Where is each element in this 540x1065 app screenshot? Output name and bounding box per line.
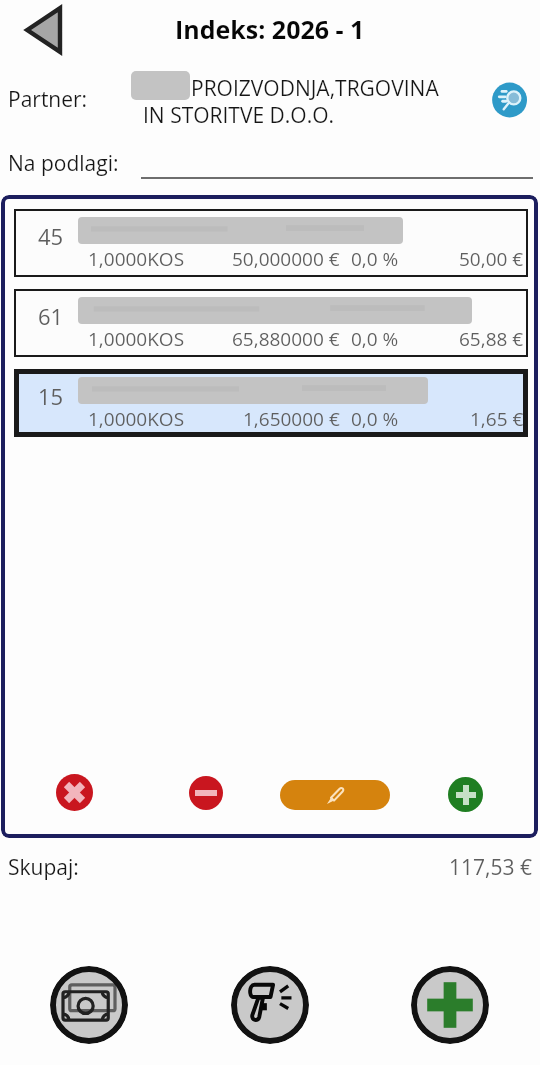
- button[interactable]: 61: [14, 289, 528, 357]
- button[interactable]: Cancel: [56, 774, 93, 811]
- button[interactable]: 45: [14, 209, 528, 277]
- staticText: 45: [38, 221, 64, 251]
- staticText: 15: [38, 381, 64, 411]
- staticText: 50,00 €: [459, 246, 524, 272]
- staticText: Skupaj:: [8, 853, 79, 882]
- button[interactable]: Remove: [189, 776, 223, 810]
- staticText: 1,650000 €: [243, 406, 340, 432]
- button[interactable]: Edit: [280, 780, 390, 810]
- button[interactable]: Payments: [50, 966, 128, 1044]
- button[interactable]: 15: [14, 369, 528, 437]
- button[interactable]: Scan barcode: [231, 966, 309, 1044]
- staticText: 1,0000KOS: [88, 406, 185, 432]
- staticText: 65,880000 €: [232, 326, 340, 352]
- staticText: 1,0000KOS: [88, 326, 185, 352]
- staticText: 117,53 €: [449, 853, 532, 882]
- button[interactable]: Add: [448, 777, 483, 812]
- staticText: 65,88 €: [459, 326, 524, 352]
- staticText: 50,000000 €: [232, 246, 340, 272]
- staticText: 1,0000KOS: [88, 246, 185, 272]
- staticText: 0,0 %: [351, 406, 399, 432]
- button[interactable]: New item: [411, 966, 489, 1044]
- staticText: Na podlagi:: [8, 149, 119, 178]
- staticText: 61: [38, 301, 64, 331]
- staticText: 1,65 €: [470, 406, 524, 432]
- staticText: Indeks: 2026 - 1: [175, 12, 365, 46]
- staticText: PROIZVODNJA,TRGOVINA: [191, 74, 439, 103]
- button[interactable]: Search partner: [489, 79, 531, 121]
- staticText: 0,0 %: [351, 326, 399, 352]
- staticText: 0,0 %: [351, 246, 399, 272]
- staticText: Partner:: [8, 85, 88, 114]
- button[interactable]: Back: [8, 0, 80, 60]
- staticText: IN STORITVE D.O.O.: [143, 101, 335, 130]
